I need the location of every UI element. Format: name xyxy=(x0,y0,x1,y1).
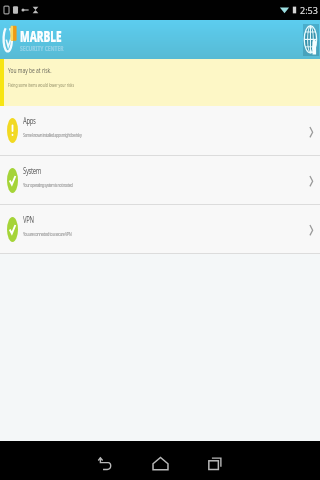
staticText: Apps xyxy=(23,114,36,127)
button[interactable]: Apps xyxy=(0,106,320,155)
staticText: Some known installed apps might be risky xyxy=(23,130,81,138)
button[interactable]: Home xyxy=(145,441,175,480)
button[interactable]: Back xyxy=(90,441,120,480)
staticText: You are connected to a secure VPN xyxy=(23,229,72,237)
staticText: Fixing some items would lower your risks xyxy=(8,82,75,89)
staticText: SECURITY CENTER xyxy=(20,44,64,53)
button[interactable]: System xyxy=(0,156,320,204)
staticText: VPN xyxy=(23,213,34,226)
staticText: Your operating system is not rooted xyxy=(23,180,72,188)
staticText: You may be at risk. xyxy=(8,65,52,75)
button[interactable]: Recent apps xyxy=(200,441,230,480)
staticText: 2:53 xyxy=(300,4,318,16)
button[interactable]: Web protection xyxy=(304,25,318,55)
button[interactable]: VPN xyxy=(0,205,320,253)
staticText: MARBLE xyxy=(20,25,62,46)
staticText: System xyxy=(23,164,42,177)
